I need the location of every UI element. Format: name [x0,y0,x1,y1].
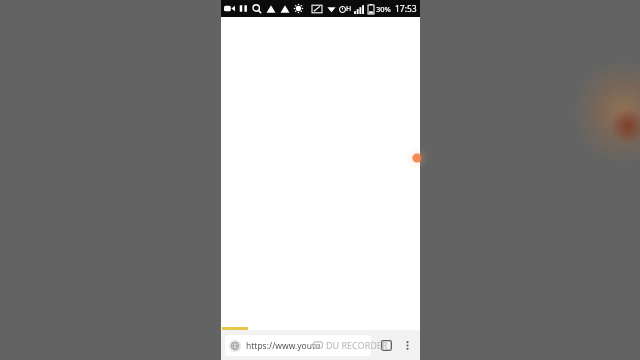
staticText: 17:53 [395,3,417,15]
button[interactable]: https://www.youtu [225,335,371,356]
staticText: https://www.youtu [246,340,321,352]
staticText: H [346,4,352,14]
staticText: DU RECORDER [326,339,388,351]
button[interactable]: Tab switcher [376,335,396,355]
button[interactable]: Screen recorder floating button [405,146,429,170]
staticText: 30% [376,4,391,14]
button[interactable]: More options [398,336,416,354]
